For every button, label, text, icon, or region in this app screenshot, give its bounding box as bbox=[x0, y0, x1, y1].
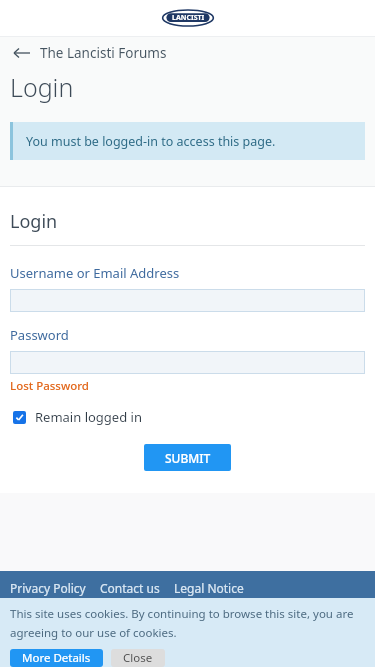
button[interactable]: More Details bbox=[10, 649, 103, 667]
button[interactable] bbox=[10, 351, 365, 374]
staticText: Login bbox=[10, 209, 58, 234]
staticText: Username or Email Address bbox=[10, 264, 180, 282]
staticText: Login bbox=[10, 70, 74, 104]
staticText: Password bbox=[10, 326, 69, 344]
staticText: LANCISTI bbox=[172, 13, 205, 23]
button[interactable]: Lost Password bbox=[10, 378, 89, 394]
staticText: Remain logged in bbox=[35, 408, 142, 426]
button[interactable]: SUBMIT bbox=[144, 444, 231, 471]
staticText: The Lancisti Forums bbox=[40, 44, 167, 62]
button[interactable]: Privacy Policy bbox=[10, 580, 86, 596]
button[interactable]: Remain logged in bbox=[13, 408, 142, 426]
button[interactable]: The Lancisti Forums bbox=[0, 37, 375, 68]
staticText: More Details bbox=[22, 650, 91, 666]
staticText: This site uses cookies. By continuing to… bbox=[10, 606, 354, 622]
button[interactable]: Contact us bbox=[100, 580, 160, 596]
button[interactable]: Legal Notice bbox=[174, 580, 244, 596]
button[interactable]: Close bbox=[111, 649, 165, 667]
staticText: Close bbox=[123, 650, 153, 666]
staticText: agreeing to our use of cookies. bbox=[10, 625, 177, 641]
staticText: You must be logged-in to access this pag… bbox=[26, 133, 276, 150]
button[interactable] bbox=[10, 289, 365, 312]
staticText: SUBMIT bbox=[165, 450, 211, 466]
